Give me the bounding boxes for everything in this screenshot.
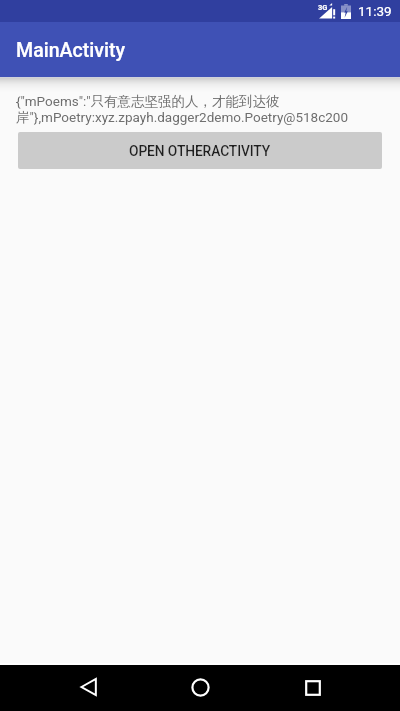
button[interactable]: Back — [64, 665, 112, 711]
staticText: MainActivity — [16, 39, 126, 62]
button[interactable]: OPEN OTHERACTIVITY — [18, 132, 382, 169]
staticText: 3G — [318, 3, 328, 12]
staticText: OPEN OTHERACTIVITY — [129, 143, 271, 159]
staticText: 11:39 — [358, 3, 392, 19]
button[interactable]: Home — [176, 665, 224, 711]
button[interactable]: Recent apps — [288, 665, 336, 711]
staticText: {"mPoems":"只有意志坚强的人，才能到达彼岸"},mPoetry:xyz… — [16, 93, 388, 126]
